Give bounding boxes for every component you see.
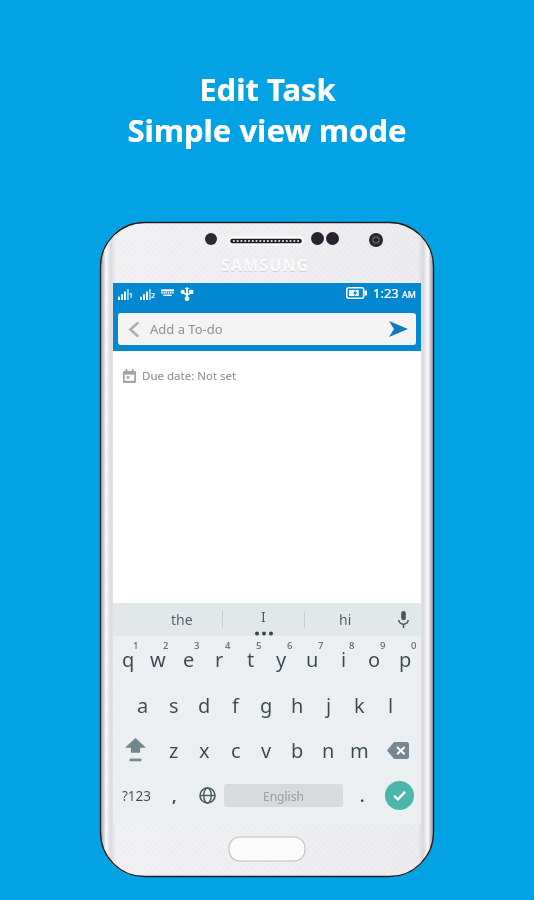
button[interactable]: Back — [118, 313, 416, 345]
staticText: t — [247, 646, 255, 673]
button[interactable]: . — [347, 773, 377, 818]
staticText: e — [183, 646, 195, 673]
staticText: English — [263, 788, 304, 804]
staticText: q — [122, 646, 135, 673]
button[interactable]: 0 — [390, 636, 421, 683]
staticText: 0 — [411, 639, 417, 652]
staticText: k — [354, 692, 365, 719]
staticText: x — [199, 737, 210, 764]
staticText: p — [399, 646, 412, 673]
staticText: l — [388, 692, 394, 719]
button[interactable]: 4 — [204, 636, 235, 683]
staticText: m — [350, 737, 369, 764]
staticText: g — [260, 692, 273, 719]
staticText: 1 — [129, 291, 134, 301]
button[interactable]: z — [158, 728, 189, 773]
button[interactable]: l — [375, 683, 406, 728]
staticText: 7 — [318, 639, 324, 652]
staticText: hi — [339, 610, 352, 629]
staticText: o — [368, 646, 381, 673]
button[interactable]: x — [189, 728, 220, 773]
staticText: z — [169, 737, 179, 764]
staticText: 3 — [194, 639, 200, 652]
staticText: j — [326, 692, 332, 719]
staticText: 5 — [256, 639, 262, 652]
staticText: Simple view mode — [127, 109, 407, 151]
button[interactable]: n — [313, 728, 344, 773]
button[interactable]: 1 — [113, 636, 143, 683]
button[interactable]: g — [251, 683, 282, 728]
staticText: y — [276, 646, 287, 673]
staticText: f — [232, 692, 239, 719]
button[interactable]: j — [313, 683, 344, 728]
button[interactable]: 3 — [173, 636, 204, 683]
button[interactable]: I — [223, 603, 304, 636]
button[interactable]: b — [282, 728, 313, 773]
staticText: 9 — [380, 639, 386, 652]
button[interactable]: 7 — [297, 636, 328, 683]
button[interactable]: a — [127, 683, 158, 728]
staticText: w — [150, 646, 166, 673]
button[interactable]: d — [189, 683, 220, 728]
staticText: 4 — [225, 639, 231, 652]
staticText: Add a To-do — [150, 320, 223, 338]
button[interactable]: Due date: Not set — [123, 351, 421, 401]
button[interactable]: m — [344, 728, 375, 773]
button[interactable]: 6 — [266, 636, 297, 683]
staticText: , — [172, 785, 177, 807]
staticText: n — [322, 737, 335, 764]
button[interactable]: v — [251, 728, 282, 773]
button[interactable]: Send — [380, 313, 416, 345]
staticText: Due date: Not set — [142, 368, 237, 384]
staticText: c — [231, 737, 241, 764]
staticText: r — [215, 646, 224, 673]
button[interactable]: Home — [229, 837, 305, 861]
staticText: 1 — [133, 639, 139, 652]
staticText: ?123 — [122, 787, 152, 805]
button[interactable]: c — [220, 728, 251, 773]
button[interactable]: Voice input — [386, 603, 421, 636]
staticText: SAMSUNG — [221, 254, 310, 276]
button[interactable]: Backspace — [375, 728, 421, 773]
staticText: 6 — [287, 639, 293, 652]
staticText: a — [137, 692, 149, 719]
staticText: AM — [402, 288, 416, 300]
staticText: h — [291, 692, 304, 719]
staticText: I — [261, 607, 266, 626]
staticText: v — [261, 737, 272, 764]
button[interactable]: 5 — [235, 636, 266, 683]
button[interactable]: 9 — [359, 636, 390, 683]
button[interactable]: ?123 — [114, 773, 159, 818]
button[interactable]: hi — [305, 603, 386, 636]
button[interactable]: the — [141, 603, 222, 636]
staticText: b — [291, 737, 304, 764]
staticText: u — [306, 646, 319, 673]
staticText: the — [171, 610, 193, 629]
staticText: s — [169, 692, 179, 719]
button[interactable]: Change language — [191, 773, 223, 818]
staticText: 1:23 — [373, 284, 399, 302]
button[interactable]: Done — [378, 773, 420, 818]
button[interactable]: Shift — [113, 728, 158, 773]
staticText: SAMSUNG — [221, 255, 310, 277]
staticText: i — [341, 646, 347, 673]
staticText: 8 — [349, 639, 355, 652]
button[interactable]: f — [220, 683, 251, 728]
staticText: Edit Task — [199, 68, 336, 110]
staticText: 2 — [151, 291, 156, 301]
button[interactable]: k — [344, 683, 375, 728]
button[interactable]: 2 — [143, 636, 173, 683]
button[interactable]: , — [161, 773, 187, 818]
button[interactable]: 8 — [328, 636, 359, 683]
button[interactable]: h — [282, 683, 313, 728]
button[interactable]: Back — [118, 313, 150, 345]
staticText: d — [198, 692, 211, 719]
button[interactable]: English — [224, 784, 343, 807]
button[interactable]: s — [158, 683, 189, 728]
staticText: . — [360, 785, 365, 807]
staticText: 2 — [163, 639, 169, 652]
